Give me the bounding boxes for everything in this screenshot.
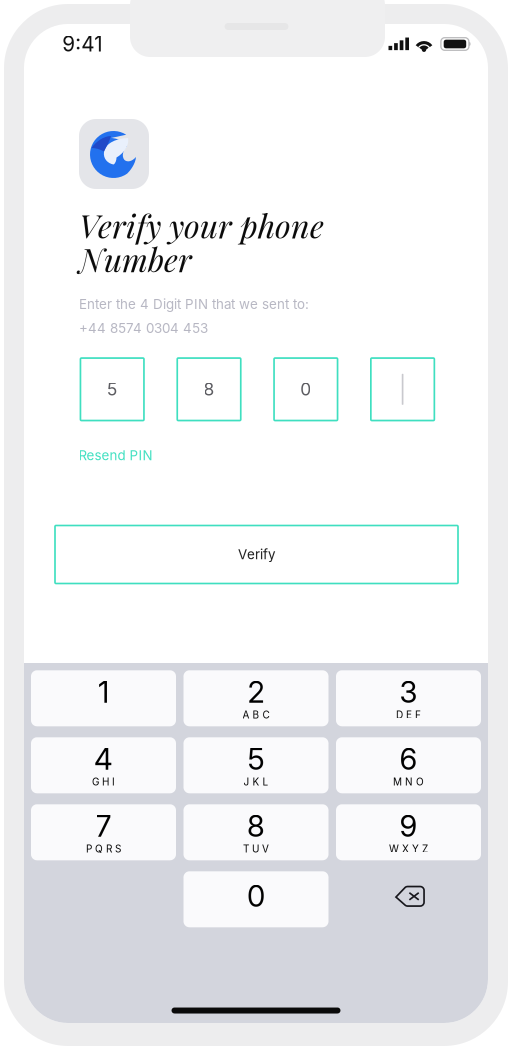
button[interactable]: 1 [31,670,176,726]
staticText: 5 [247,741,264,777]
button[interactable]: 0 [183,871,328,927]
staticText: +44 8574 0304 453 [79,320,208,336]
staticText: 0 [247,878,265,914]
staticText: J K L [243,776,268,788]
button[interactable]: PIN digit 4 [371,358,434,421]
button[interactable]: 9 [336,804,481,860]
button[interactable]: 8 [183,804,328,860]
staticText: Verify your phone [79,204,324,247]
button[interactable]: Verify [55,525,458,583]
staticText: 9:41 [62,31,102,56]
staticText: 3 [399,674,417,710]
staticText: 7 [95,808,111,844]
staticText: 2 [247,674,264,710]
staticText: 4 [94,741,113,777]
staticText: T U V [243,843,269,855]
button[interactable]: 6 [336,737,481,793]
staticText: A B C [242,709,269,721]
staticText: 6 [399,741,417,777]
staticText: Enter the 4 Digit PIN that we sent to: [79,296,309,312]
staticText: Resend PIN [78,447,152,463]
staticText: D E F [396,709,421,721]
staticText: W X Y Z [389,843,428,855]
button[interactable]: 2 [183,670,328,726]
staticText: P Q R S [86,843,121,855]
staticText: 9 [399,808,417,844]
staticText: 1 [98,674,109,710]
staticText: 8 [203,379,214,400]
button[interactable]: Delete [336,871,481,927]
button[interactable]: 7 [31,804,176,860]
staticText: 0 [300,379,311,400]
staticText: G H I [92,776,115,788]
staticText: 8 [247,808,265,844]
staticText: Number [79,238,192,280]
button[interactable]: PIN digit 5 [80,358,144,421]
button[interactable]: Resend PIN [76,440,154,470]
button[interactable]: 3 [336,670,481,726]
button[interactable]: 5 [183,737,328,793]
button[interactable]: PIN digit 8 [177,358,241,421]
button[interactable]: 4 [31,737,176,793]
button[interactable]: PIN digit 0 [274,358,338,421]
staticText: 5 [107,379,118,400]
staticText: Verify [238,546,275,562]
staticText: M N O [393,776,424,788]
